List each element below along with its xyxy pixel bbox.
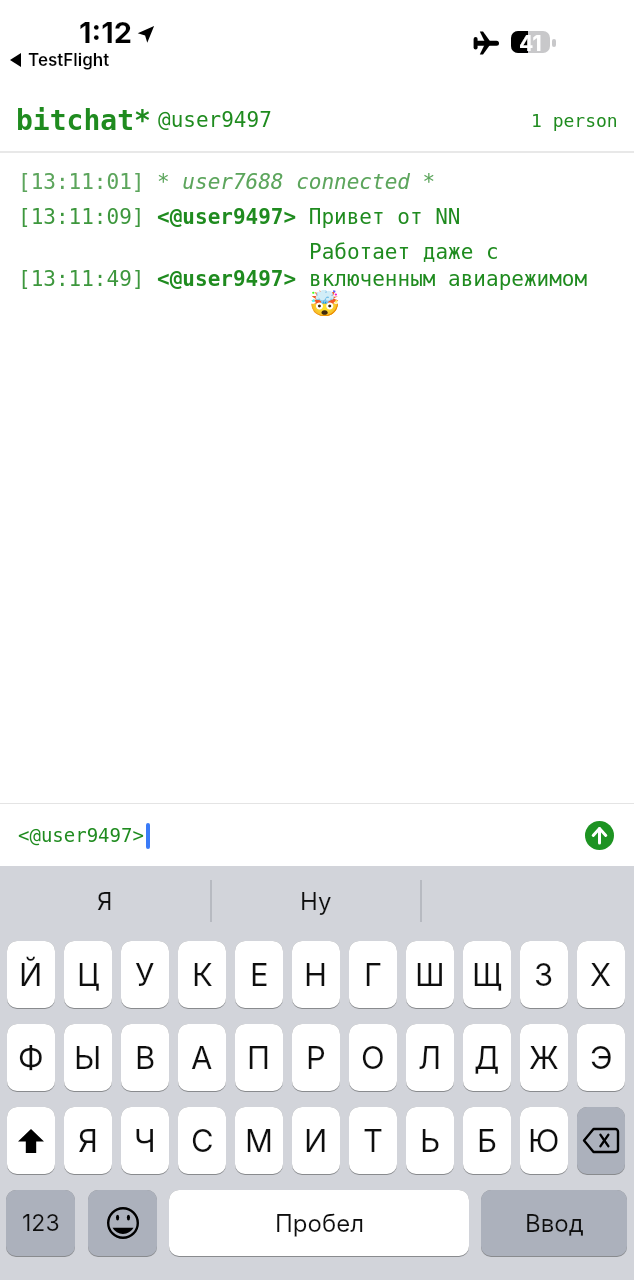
staticText: А: [191, 1039, 213, 1077]
staticText: Ы: [74, 1039, 102, 1077]
staticText: Пробел: [275, 1209, 364, 1238]
button[interactable]: И: [292, 1107, 340, 1174]
button[interactable]: Х: [577, 941, 625, 1008]
staticText: Х: [590, 956, 612, 994]
staticText: bitchat*: [16, 104, 151, 137]
button[interactable]: Т: [349, 1107, 397, 1174]
staticText: Ч: [134, 1122, 156, 1160]
button[interactable]: З: [520, 941, 568, 1008]
button[interactable]: Б: [463, 1107, 511, 1174]
button[interactable]: bitchat*: [16, 100, 618, 140]
button[interactable]: Ну: [211, 872, 420, 930]
button[interactable]: Пробел: [169, 1190, 469, 1256]
button[interactable]: [585, 821, 614, 850]
button[interactable]: <@user9497>: [0, 804, 634, 866]
button[interactable]: Р: [292, 1024, 340, 1091]
staticText: И: [304, 1122, 328, 1160]
staticText: 123: [22, 1209, 60, 1237]
staticText: Ну: [300, 887, 332, 916]
button[interactable]: Ч: [121, 1107, 169, 1174]
button[interactable]: Ц: [64, 941, 112, 1008]
staticText: Ввод: [525, 1209, 584, 1238]
staticText: <@user9497>: [18, 824, 144, 846]
button[interactable]: У: [121, 941, 169, 1008]
staticText: Ж: [529, 1039, 559, 1077]
staticText: Ш: [415, 956, 445, 994]
staticText: С: [191, 1122, 214, 1160]
staticText: Б: [477, 1122, 498, 1160]
button[interactable]: М: [235, 1107, 283, 1174]
button[interactable]: К: [178, 941, 226, 1008]
staticText: М: [245, 1122, 274, 1160]
staticText: Д: [474, 1039, 500, 1077]
button[interactable]: [7, 1107, 55, 1174]
staticText: Л: [418, 1039, 442, 1077]
staticText: Щ: [472, 956, 503, 994]
button[interactable]: [88, 1190, 157, 1256]
button[interactable]: Ю: [520, 1107, 568, 1174]
button[interactable]: Ь: [406, 1107, 454, 1174]
staticText: Г: [364, 956, 382, 994]
button[interactable]: 123: [6, 1190, 75, 1256]
staticText: Е: [250, 956, 269, 994]
button[interactable]: Й: [7, 941, 55, 1008]
button[interactable]: С: [178, 1107, 226, 1174]
button[interactable]: Щ: [463, 941, 511, 1008]
button[interactable]: В: [121, 1024, 169, 1091]
staticText: 1 person: [531, 110, 618, 131]
staticText: З: [534, 956, 554, 994]
button[interactable]: Ввод: [481, 1190, 627, 1256]
button[interactable]: Д: [463, 1024, 511, 1091]
staticText: TestFlight: [28, 50, 110, 71]
staticText: [13:11:49] <@user9497>: [18, 267, 309, 291]
button[interactable]: П: [235, 1024, 283, 1091]
staticText: [13:11:01] * user7688 connected *: [18, 170, 436, 194]
staticText: В: [135, 1039, 156, 1077]
staticText: [13:11:09] <@user9497> Привет от NN: [18, 205, 461, 229]
staticText: Ц: [77, 956, 100, 994]
button[interactable]: Ы: [64, 1024, 112, 1091]
staticText: Р: [306, 1039, 326, 1077]
staticText: Н: [304, 956, 328, 994]
staticText: 41: [519, 31, 542, 53]
button[interactable]: Я: [64, 1107, 112, 1174]
button[interactable]: Я: [0, 872, 210, 930]
staticText: Работает даже с включенным авиарежимом 🤯: [309, 240, 616, 318]
staticText: Я: [78, 1122, 98, 1160]
staticText: Ю: [528, 1122, 560, 1160]
staticText: У: [135, 956, 155, 994]
button[interactable]: Г: [349, 941, 397, 1008]
staticText: Э: [590, 1039, 613, 1077]
staticText: @user9497: [158, 108, 272, 132]
button[interactable]: О: [349, 1024, 397, 1091]
button[interactable]: Ш: [406, 941, 454, 1008]
staticText: Й: [19, 956, 43, 994]
button[interactable]: [577, 1107, 625, 1174]
staticText: Т: [363, 1122, 384, 1160]
button[interactable]: Л: [406, 1024, 454, 1091]
button[interactable]: Н: [292, 941, 340, 1008]
button[interactable]: Э: [577, 1024, 625, 1091]
staticText: П: [247, 1039, 271, 1077]
staticText: О: [361, 1039, 385, 1077]
staticText: Ф: [18, 1039, 44, 1077]
button[interactable]: Ж: [520, 1024, 568, 1091]
button[interactable]: Е: [235, 941, 283, 1008]
staticText: Ь: [420, 1122, 441, 1160]
staticText: Я: [97, 887, 113, 916]
button[interactable]: А: [178, 1024, 226, 1091]
button[interactable]: Ф: [7, 1024, 55, 1091]
staticText: К: [192, 956, 213, 994]
staticText: 1:12: [79, 15, 132, 50]
